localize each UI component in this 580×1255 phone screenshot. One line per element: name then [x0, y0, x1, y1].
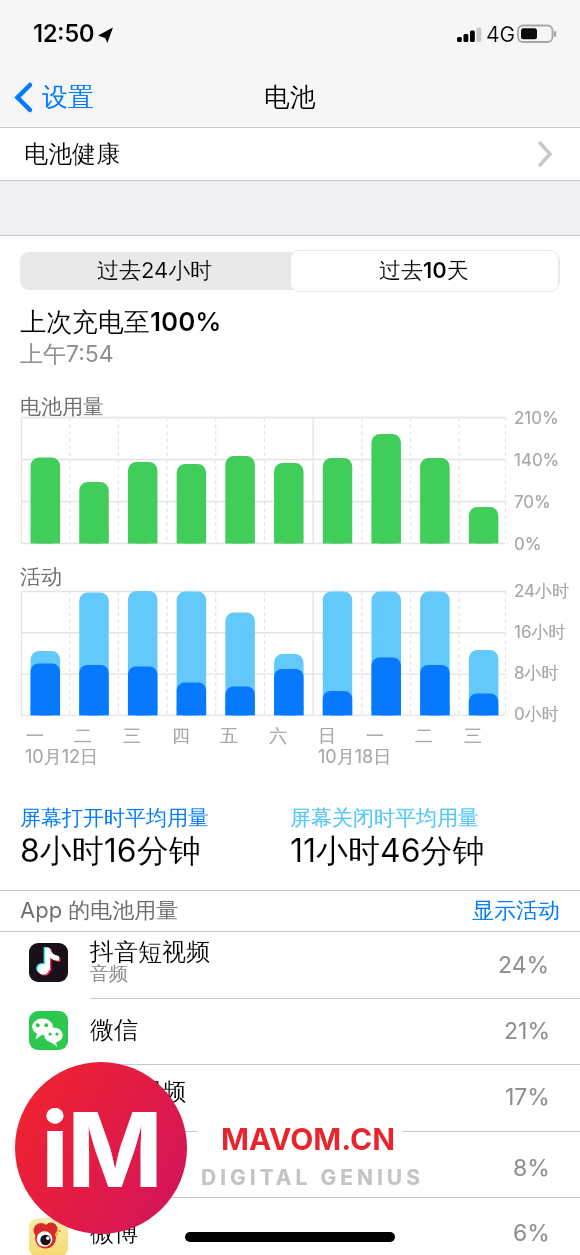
staticText: 16小时	[514, 622, 566, 644]
staticText: 设置	[42, 81, 94, 114]
staticText: 屏幕关闭时平均用量	[290, 805, 479, 831]
staticText: 17%	[505, 1083, 550, 1111]
staticText: 70%	[514, 492, 551, 513]
staticText: 24小时	[514, 581, 570, 603]
staticText: DIGITAL GENIUS	[201, 1165, 424, 1190]
button[interactable]	[20, 252, 290, 290]
staticText: 三	[123, 725, 141, 748]
staticText: 二	[74, 725, 92, 748]
button[interactable]: 显示活动	[160, 881, 560, 941]
staticText: 上次充电至100%	[20, 306, 222, 339]
staticText: 腾讯视频	[90, 1077, 186, 1107]
staticText: 210%	[514, 408, 559, 429]
staticText: 电池用量	[20, 394, 104, 420]
staticText: 140%	[514, 450, 560, 471]
staticText: 8小时16分钟	[20, 831, 201, 872]
staticText: 五	[220, 725, 238, 748]
staticText: 日	[318, 725, 336, 748]
staticText: 12:50	[33, 19, 95, 48]
button[interactable]	[10, 78, 120, 118]
staticText: 二	[415, 725, 433, 748]
staticText: 四	[172, 725, 190, 748]
staticText: 8%	[513, 1154, 550, 1182]
button[interactable]	[0, 998, 580, 1064]
staticText: 10月18日	[318, 746, 392, 769]
button[interactable]	[0, 1130, 580, 1198]
staticText: 10月12日	[25, 746, 98, 769]
staticText: 4G	[486, 22, 516, 47]
staticText: 电池	[264, 81, 316, 114]
staticText: 8小时	[514, 663, 559, 685]
staticText: 一	[26, 725, 44, 748]
staticText: 11小时46分钟	[290, 831, 485, 872]
staticText: iM	[41, 1087, 161, 1212]
staticText: 电池健康	[24, 139, 120, 169]
button[interactable]	[0, 128, 580, 180]
button[interactable]	[0, 932, 580, 998]
staticText: 0小时	[514, 704, 559, 726]
staticText: MAVOM.CN	[221, 1121, 395, 1157]
staticText: 上午7:54	[20, 340, 114, 369]
staticText: 活动	[20, 564, 62, 590]
staticText: 过去24小时	[97, 257, 213, 285]
staticText: App 的电池用量	[20, 897, 179, 925]
staticText: 三	[464, 725, 482, 748]
button[interactable]	[291, 251, 558, 291]
staticText: 过去10天	[379, 257, 469, 285]
staticText: 0%	[514, 534, 542, 555]
staticText: 21%	[504, 1017, 550, 1045]
staticText: 六	[269, 725, 287, 748]
staticText: 音频	[90, 962, 128, 986]
staticText: 显示活动	[472, 897, 560, 925]
staticText: 抖音短视频	[90, 937, 210, 967]
staticText: 微信	[90, 1015, 138, 1045]
button[interactable]	[0, 1064, 580, 1130]
button[interactable]	[0, 1198, 580, 1255]
staticText: 6%	[513, 1219, 550, 1247]
staticText: 微博	[90, 1218, 138, 1248]
staticText: 24%	[498, 951, 550, 979]
staticText: 屏幕打开时平均用量	[20, 805, 209, 831]
staticText: 一	[366, 725, 384, 748]
